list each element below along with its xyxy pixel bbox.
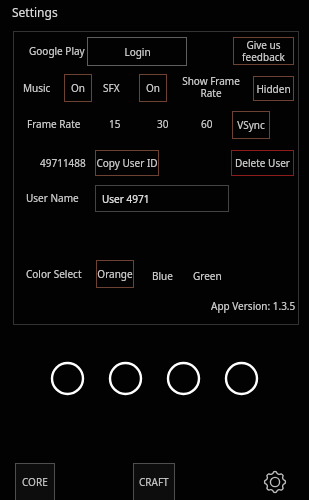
staticText: 15 [109, 117, 121, 131]
staticText: App Version: 1.3.5 [211, 299, 296, 313]
staticText: CRAFT [139, 475, 169, 489]
staticText: Delete User [235, 156, 290, 170]
button[interactable]: Give us feedback [233, 37, 294, 65]
button[interactable]: Login [87, 37, 187, 66]
button[interactable]: On [139, 74, 167, 102]
staticText: 30 [157, 117, 169, 131]
staticText: Blue [152, 269, 173, 283]
staticText: Music [23, 81, 51, 95]
button[interactable]: On [64, 74, 92, 102]
staticText: Show Frame Rate [176, 74, 246, 100]
staticText: Login [124, 45, 151, 59]
staticText: Google Play [29, 44, 85, 58]
staticText: Copy User ID [96, 156, 158, 170]
staticText: 49711488 [40, 156, 86, 170]
staticText: Color Select [26, 267, 82, 281]
button[interactable]: Orange [96, 260, 134, 288]
staticText: Green [193, 269, 222, 283]
button[interactable]: VSync [232, 111, 270, 139]
button[interactable]: Hidden [253, 76, 294, 101]
staticText: Settings [12, 4, 58, 20]
button[interactable]: Delete User [231, 150, 294, 176]
staticText: VSync [237, 118, 265, 132]
staticText: Orange [97, 267, 133, 281]
button[interactable]: CORE [15, 463, 55, 500]
staticText: Frame Rate [27, 117, 81, 131]
staticText: User Name [26, 191, 79, 205]
staticText: CORE [22, 475, 48, 489]
staticText: Give us feedback [233, 38, 294, 64]
staticText: Hidden [256, 82, 291, 96]
staticText: On [146, 81, 160, 95]
button[interactable]: Copy User ID [95, 150, 159, 176]
button[interactable]: Settings [262, 469, 288, 495]
staticText: User 4971 [102, 192, 150, 206]
button[interactable]: CRAFT [133, 463, 175, 500]
button[interactable]: User 4971 [95, 185, 229, 212]
staticText: SFX [103, 81, 120, 95]
staticText: 60 [201, 117, 213, 131]
staticText: On [71, 81, 85, 95]
